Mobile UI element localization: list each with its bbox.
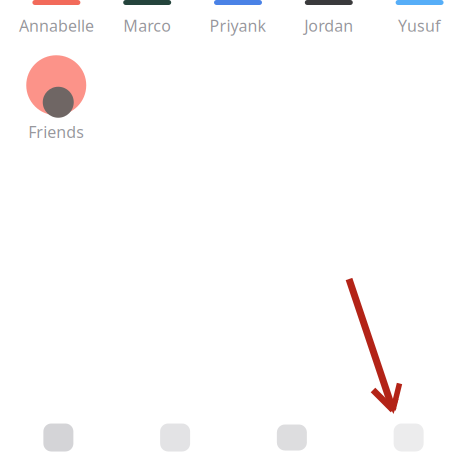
button[interactable]: Profile [350,408,467,467]
button[interactable]: Chats [233,408,350,467]
button[interactable]: Jordan [283,0,374,36]
staticText: Yusuf [398,15,441,36]
staticText: Annabelle [19,15,94,36]
button[interactable]: Friends [11,55,101,142]
button[interactable]: Discover [117,408,234,467]
staticText: Priyank [209,15,266,36]
button[interactable]: Yusuf [374,0,465,36]
staticText: Marco [123,15,171,36]
staticText: Jordan [304,15,353,36]
button[interactable]: Home [0,408,117,467]
button[interactable]: Marco [102,0,193,36]
staticText: Friends [28,121,84,142]
button[interactable]: Priyank [193,0,283,36]
button[interactable]: Annabelle [11,0,102,36]
